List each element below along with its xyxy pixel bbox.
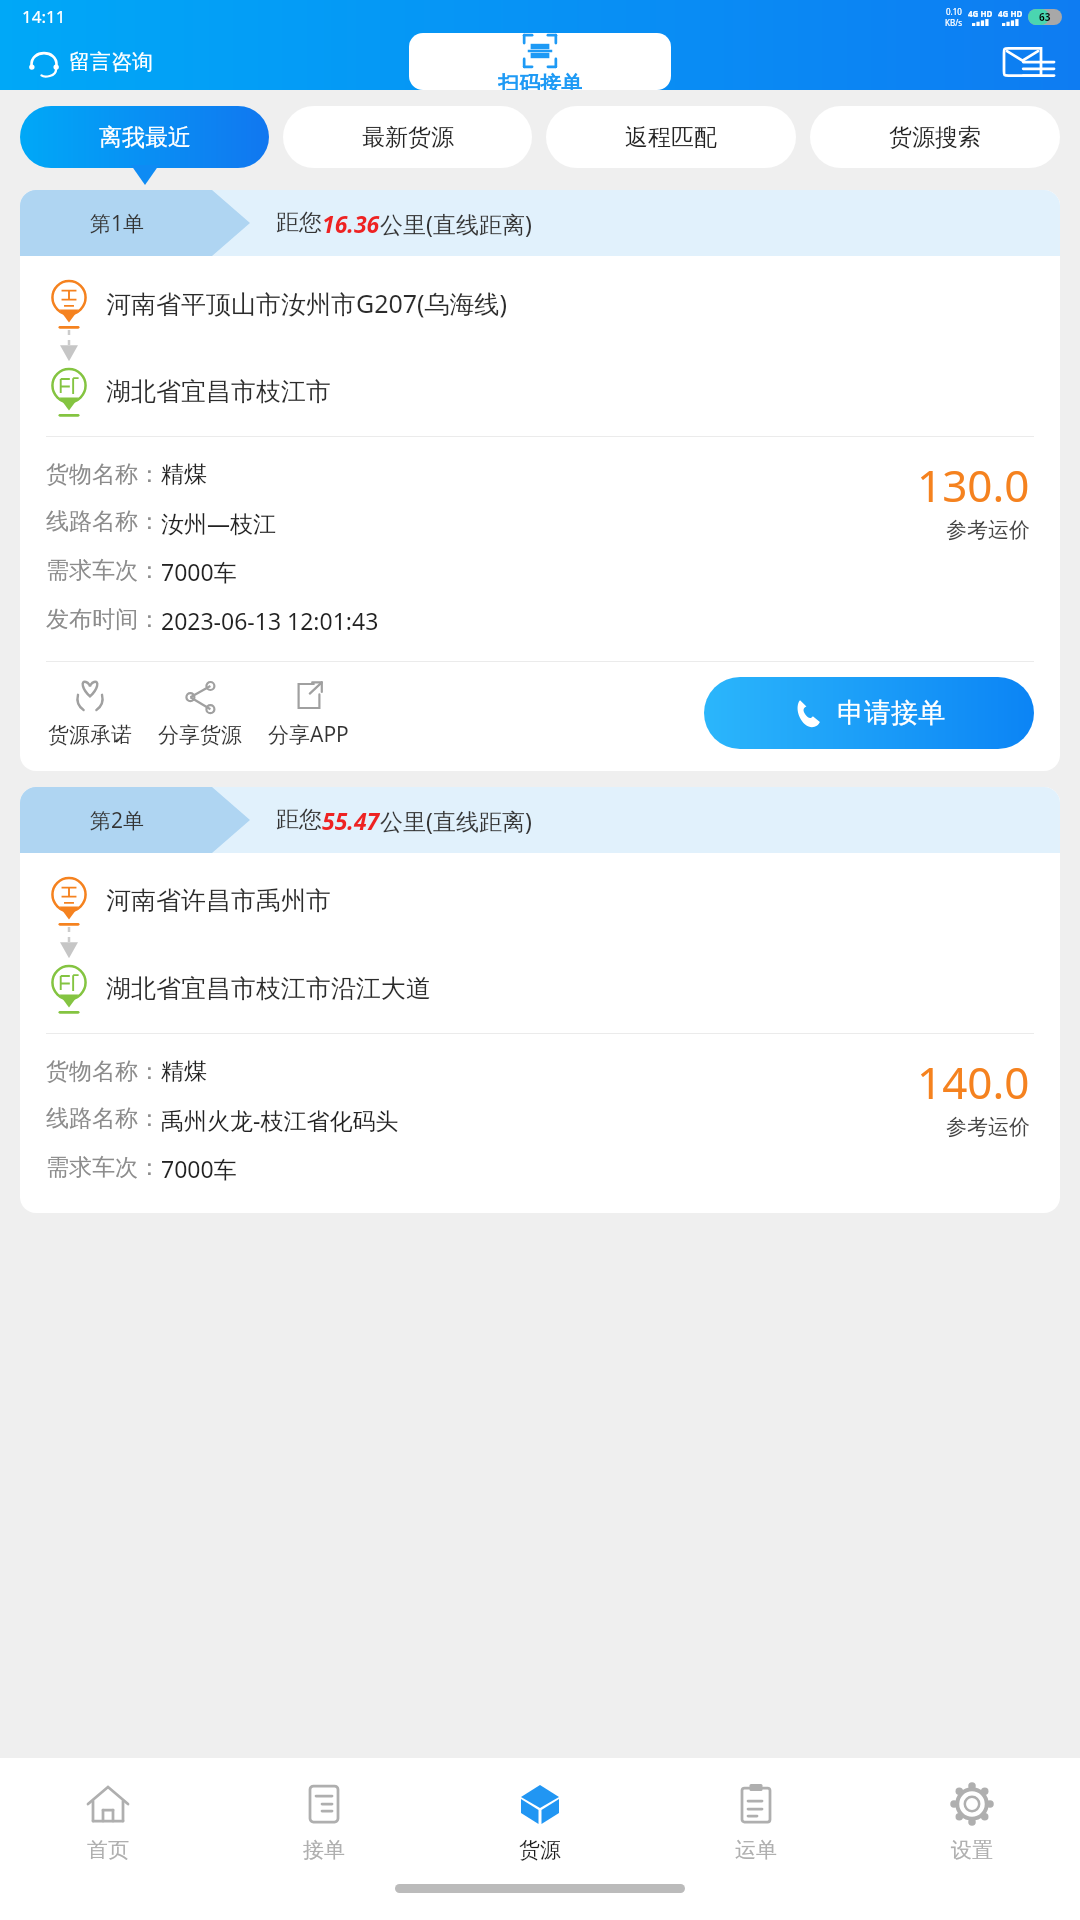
button[interactable]: 分享APP (266, 674, 351, 751)
staticText: 河南省许昌市禹州市 (106, 885, 331, 916)
staticText: 线路名称： (46, 1104, 161, 1133)
staticText: 参考运价 (946, 1114, 1030, 1140)
staticText: 公里(直线距离) (380, 805, 532, 836)
staticText: 留言咨询 (69, 49, 153, 75)
button[interactable]: 货源搜索 (810, 106, 1060, 168)
staticText: 参考运价 (946, 517, 1030, 543)
staticText: 精煤 (161, 460, 207, 489)
staticText: 汝州—枝江 (161, 507, 276, 538)
staticText: 河南省平顶山市汝州市G207(乌海线) (106, 286, 508, 320)
staticText: 需求车次： (46, 556, 161, 585)
button[interactable]: 返程匹配 (546, 106, 796, 168)
staticText: 运单 (735, 1837, 777, 1863)
staticText: 4G HD (968, 8, 993, 19)
staticText: 精煤 (161, 1057, 207, 1086)
button[interactable]: 运单 (648, 1758, 864, 1884)
button[interactable]: 申请接单 (704, 677, 1034, 749)
staticText: 货源 (519, 1837, 561, 1863)
staticText: 禹州火龙-枝江省化码头 (161, 1104, 399, 1135)
button[interactable]: 第2单 (20, 787, 1060, 1213)
button[interactable]: 第1单 (20, 190, 1060, 771)
staticText: 55.47 (322, 805, 380, 836)
button[interactable]: 离我最近 (20, 106, 269, 168)
staticText: 离我最近 (99, 123, 191, 152)
staticText: 最新货源 (362, 123, 454, 152)
staticText: 分享货源 (158, 722, 242, 748)
staticText: 发布时间： (46, 605, 161, 634)
staticText: 线路名称： (46, 507, 161, 536)
staticText: KB/s (945, 17, 962, 28)
staticText: 首页 (87, 1837, 129, 1863)
staticText: 4G HD (998, 8, 1023, 19)
staticText: 0.10 (946, 6, 962, 17)
staticText: 第1单 (90, 209, 145, 238)
staticText: 接单 (303, 1837, 345, 1863)
staticText: 130.0 (917, 455, 1030, 515)
button[interactable]: 扫码接单 (409, 33, 671, 90)
staticText: 距您 (276, 805, 322, 834)
staticText: 返程匹配 (625, 123, 717, 152)
button[interactable]: 首页 (0, 1758, 216, 1884)
staticText: 63 (1039, 10, 1051, 24)
staticText: 7000车 (161, 556, 237, 587)
staticText: 湖北省宜昌市枝江市沿江大道 (106, 973, 431, 1004)
staticText: 货物名称： (46, 1057, 161, 1086)
button[interactable]: 接单 (216, 1758, 432, 1884)
button[interactable]: 货源承诺 (46, 676, 134, 750)
staticText: 140.0 (917, 1052, 1030, 1112)
staticText: 设置 (951, 1837, 993, 1863)
button[interactable]: 货源 (432, 1758, 648, 1884)
staticText: 14:11 (22, 5, 66, 28)
button[interactable]: 留言咨询 (24, 42, 157, 82)
staticText: 分享APP (268, 720, 349, 749)
button[interactable]: 分享货源 (156, 676, 244, 750)
staticText: 货源搜索 (889, 123, 981, 152)
staticText: 16.36 (322, 208, 380, 239)
staticText: 距您 (276, 208, 322, 237)
staticText: 2023-06-13 12:01:43 (161, 605, 379, 636)
staticText: 7000车 (161, 1153, 237, 1184)
staticText: 公里(直线距离) (380, 208, 532, 239)
staticText: 需求车次： (46, 1153, 161, 1182)
staticText: 第2单 (90, 806, 145, 835)
staticText: 湖北省宜昌市枝江市 (106, 376, 331, 407)
staticText: 货物名称： (46, 460, 161, 489)
button[interactable]: 设置 (864, 1758, 1080, 1884)
button[interactable]: 最新货源 (283, 106, 532, 168)
staticText: 扫码接单 (498, 71, 582, 90)
button[interactable]: 消息 (1000, 38, 1058, 86)
staticText: 申请接单 (837, 696, 945, 730)
staticText: 货源承诺 (48, 722, 132, 748)
